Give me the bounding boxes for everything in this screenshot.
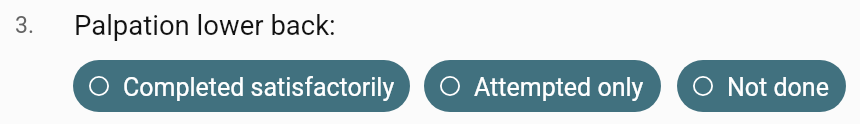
staticText: Completed satisfactorily	[123, 73, 395, 102]
staticText: Attempted only	[474, 73, 644, 102]
button[interactable]: Not done	[677, 60, 846, 112]
staticText: Palpation lower back:	[74, 9, 336, 41]
button[interactable]: Completed satisfactorily	[73, 60, 410, 112]
staticText: Not done	[727, 73, 829, 102]
staticText: 3.	[15, 12, 34, 39]
button[interactable]: Attempted only	[424, 60, 661, 112]
